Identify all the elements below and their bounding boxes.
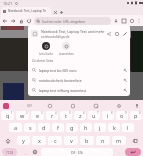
button[interactable]: o: [116, 111, 128, 120]
button[interactable]: Notebook Test, Laptop Test und mehr: [28, 25, 130, 42]
staticText: v: [70, 137, 73, 144]
button[interactable]: k: [108, 123, 120, 132]
staticText: Lesezeichen: [59, 52, 74, 56]
button[interactable]: Lesezeichen: [57, 42, 75, 56]
staticText: e: [36, 112, 40, 119]
button[interactable]: p: [130, 111, 142, 120]
button[interactable]: b: [80, 136, 94, 145]
button[interactable]: Settings: [113, 100, 124, 111]
button[interactable]: Home: [17, 17, 25, 25]
button[interactable]: z: [74, 111, 86, 120]
staticText: f: [57, 124, 59, 131]
button[interactable]: Backspace: [128, 136, 142, 145]
staticText: o: [120, 112, 124, 119]
button[interactable]: Shift: [1, 136, 15, 145]
staticText: 1: [11, 111, 13, 115]
button[interactable]: laptop test bis 600 euro: [28, 65, 130, 75]
button[interactable]: Clipboard: [67, 100, 78, 111]
staticText: Suchen oder URL eingeben: [42, 19, 86, 24]
button[interactable]: t: [60, 111, 72, 120]
staticText: a: [14, 124, 18, 131]
button[interactable]: n: [96, 136, 110, 145]
staticText: u: [92, 112, 96, 119]
staticText: 3: [41, 111, 43, 115]
button[interactable]: j: [94, 123, 106, 132]
button[interactable]: Lens-Suche: [37, 42, 55, 56]
staticText: m: [116, 137, 122, 144]
staticText: k: [113, 124, 116, 131]
button[interactable]: DE · EN: [41, 148, 113, 156]
staticText: 9: [125, 111, 127, 115]
button[interactable]: m: [112, 136, 126, 145]
staticText: n: [101, 137, 105, 144]
staticText: b: [85, 137, 89, 144]
button[interactable]: Profile: [128, 17, 136, 25]
staticText: .: [119, 150, 120, 155]
button[interactable]: More options: [136, 18, 142, 24]
button[interactable]: New tab: [58, 9, 64, 15]
button[interactable]: s: [24, 123, 36, 132]
button[interactable]: Extensions: [120, 17, 128, 25]
staticText: Notebook Test, Laptop Te: [8, 9, 46, 13]
staticText: j: [99, 124, 101, 131]
staticText: 8: [111, 111, 113, 115]
staticText: d: [42, 124, 46, 131]
button[interactable]: Suchen oder URL eingeben: [34, 17, 111, 25]
button[interactable]: e: [31, 111, 44, 120]
button[interactable]: Enter: [125, 148, 141, 156]
button[interactable]: Sticker: [90, 100, 101, 111]
staticText: Zu dieser Seite: [32, 59, 54, 63]
staticText: y: [22, 137, 25, 144]
staticText: 5: [69, 111, 71, 115]
button[interactable]: c: [48, 136, 62, 145]
staticText: 0: [139, 111, 141, 115]
staticText: Notebook Test, Laptop Test und mehr: [41, 29, 105, 34]
button[interactable]: w: [16, 111, 29, 120]
button[interactable]: Downloads: [112, 17, 120, 25]
button[interactable]: laptop test stiftung warentest: [28, 85, 130, 95]
button[interactable]: g: [66, 123, 78, 132]
staticText: ?123: [6, 150, 14, 155]
button[interactable]: x: [32, 136, 46, 145]
button[interactable]: Keyboard switcher: [3, 103, 9, 109]
staticText: g: [70, 124, 74, 131]
button[interactable]: Edit: [121, 30, 129, 38]
button[interactable]: ?123: [2, 148, 17, 156]
staticText: q: [6, 112, 10, 119]
button[interactable]: r: [46, 111, 58, 120]
button[interactable]: q: [1, 111, 14, 120]
button[interactable]: u: [88, 111, 100, 120]
button[interactable]: Close tab: [52, 9, 58, 15]
staticText: l: [127, 124, 129, 131]
button[interactable]: d: [38, 123, 50, 132]
button[interactable]: i: [102, 111, 114, 120]
button[interactable]: Back: [1, 17, 9, 25]
button[interactable]: notebookcheck bestenliste: [28, 75, 130, 85]
button[interactable]: Share: [105, 30, 113, 38]
staticText: laptop test bis 600 euro: [39, 68, 77, 73]
button[interactable]: Notebook Test, Laptop Te: [1, 7, 51, 15]
button[interactable]: f: [52, 123, 64, 132]
button[interactable]: y: [17, 136, 30, 145]
button[interactable]: ,: [22, 148, 29, 156]
button[interactable]: Themes: [44, 100, 55, 111]
button[interactable]: h: [80, 123, 92, 132]
button[interactable]: Emoji: [31, 148, 38, 156]
staticText: z: [79, 112, 82, 119]
staticText: GIF: [27, 104, 33, 108]
button[interactable]: Voice input: [132, 101, 142, 111]
button[interactable]: Forward: [9, 17, 17, 25]
button[interactable]: Reload: [25, 17, 33, 25]
staticText: i: [107, 112, 109, 119]
staticText: DE · EN: [71, 150, 83, 155]
staticText: 2: [26, 111, 28, 115]
button[interactable]: a: [9, 123, 22, 132]
button[interactable]: Copy link: [113, 30, 121, 38]
staticText: h: [84, 124, 88, 131]
staticText: ,: [25, 150, 26, 155]
staticText: 4: [55, 111, 57, 115]
button[interactable]: l: [122, 123, 134, 132]
staticText: 10:21: [3, 1, 13, 6]
button[interactable]: v: [64, 136, 78, 145]
